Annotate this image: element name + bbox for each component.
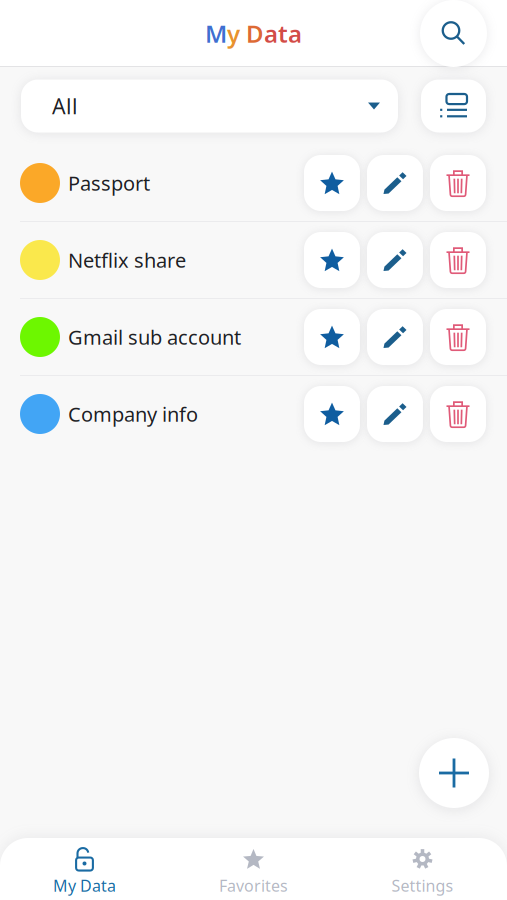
button[interactable]: Edit	[367, 232, 423, 288]
button[interactable]: Favorites	[169, 838, 338, 900]
staticText: All	[52, 92, 78, 120]
staticText: My Data	[53, 875, 116, 896]
staticText: y	[227, 18, 240, 49]
staticText: ata	[264, 18, 302, 49]
button[interactable]: Delete	[430, 232, 486, 288]
button[interactable]: Edit	[367, 309, 423, 365]
button[interactable]: Search	[420, 0, 487, 67]
button[interactable]: Favourite	[304, 309, 360, 365]
button[interactable]: Add	[419, 738, 489, 808]
button[interactable]: All	[21, 79, 398, 132]
button[interactable]: Delete	[430, 309, 486, 365]
staticText: Netflix share	[68, 247, 186, 273]
button[interactable]: Edit	[367, 386, 423, 442]
button[interactable]: Delete	[430, 386, 486, 442]
button[interactable]: Delete	[430, 155, 486, 211]
staticText: Settings	[391, 875, 453, 896]
staticText: Favorites	[219, 875, 288, 896]
staticText: Gmail sub account	[68, 324, 241, 350]
button[interactable]: My Data	[0, 838, 169, 900]
staticText: D	[246, 18, 264, 49]
button[interactable]: Favourite	[304, 155, 360, 211]
button[interactable]: Settings	[338, 838, 507, 900]
staticText: Passport	[68, 170, 150, 196]
button[interactable]: Change view	[421, 79, 486, 132]
button[interactable]: Favourite	[304, 386, 360, 442]
staticText: Company info	[68, 401, 198, 427]
button[interactable]: Edit	[367, 155, 423, 211]
staticText: M	[205, 18, 227, 49]
button[interactable]: Favourite	[304, 232, 360, 288]
